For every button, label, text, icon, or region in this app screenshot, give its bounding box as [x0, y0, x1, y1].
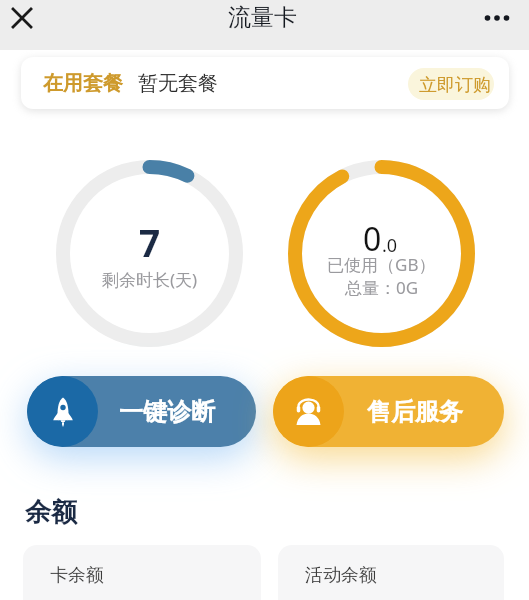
staticText: 活动余额 [305, 564, 377, 587]
button[interactable]: 卡余额 [23, 545, 261, 600]
button[interactable]: More options [475, 0, 519, 36]
staticText: 余额 [25, 496, 77, 529]
staticText: 售后服务 [367, 397, 463, 427]
staticText: 一键诊断 [119, 397, 215, 427]
staticText: 0 [363, 217, 382, 261]
staticText: 在用套餐 [43, 71, 123, 96]
staticText: 总量：0G [345, 276, 419, 299]
staticText: 立即订购 [419, 74, 491, 97]
staticText: .0 [382, 233, 398, 258]
staticText: 剩余时长(天) [102, 268, 198, 291]
staticText: 暂无套餐 [138, 71, 218, 96]
button[interactable]: 在用套餐 [21, 57, 509, 109]
staticText: 已使用（GB） [327, 253, 436, 276]
staticText: 7 [139, 217, 161, 267]
button[interactable]: 售后服务 [273, 376, 504, 447]
staticText: 流量卡 [228, 3, 297, 32]
staticText: 卡余额 [50, 564, 104, 587]
button[interactable]: 立即订购 [408, 68, 494, 100]
button[interactable]: Close [0, 0, 44, 36]
button[interactable]: 一键诊断 [27, 376, 256, 447]
button[interactable]: 活动余额 [278, 545, 504, 600]
